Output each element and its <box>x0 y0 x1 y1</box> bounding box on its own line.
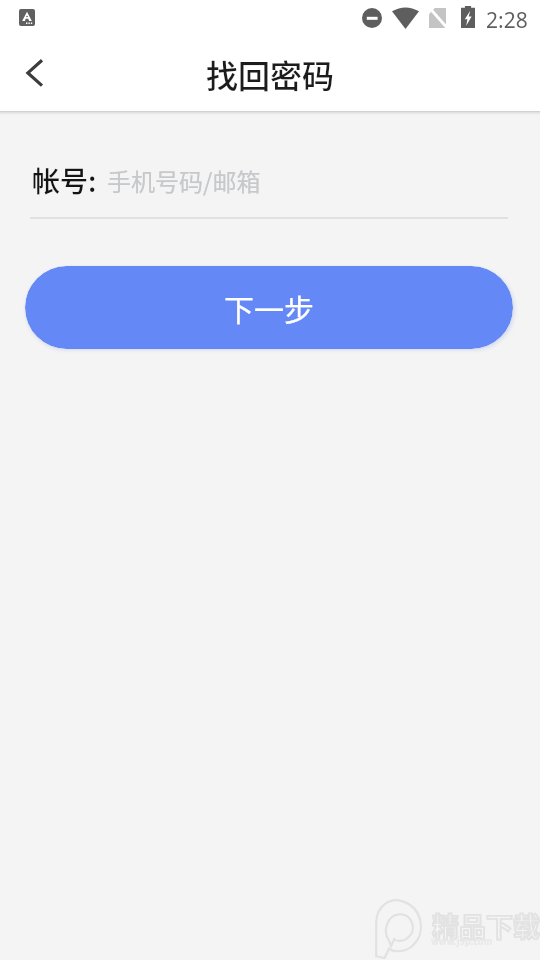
button[interactable]: 帐号: <box>32 150 540 210</box>
button[interactable]: 下一步 <box>25 266 513 349</box>
staticText: 2:28 <box>486 6 528 35</box>
staticText: 精品下载 <box>432 906 540 945</box>
staticText: www.j9p.com <box>431 935 493 948</box>
staticText: 下一步 <box>224 286 314 329</box>
staticText: 手机号码/邮箱 <box>107 163 261 198</box>
staticText: 帐号: <box>32 160 97 201</box>
staticText: 找回密码 <box>0 51 540 97</box>
button[interactable]: Back <box>6 45 62 101</box>
